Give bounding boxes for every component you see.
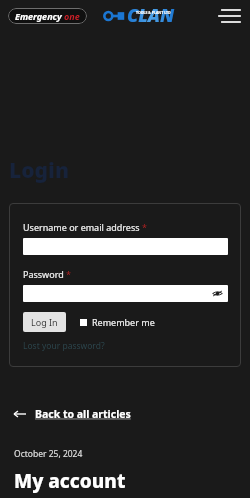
- button[interactable]: Log In: [23, 312, 66, 332]
- button[interactable]: Open menu: [214, 1, 244, 31]
- staticText: Remember me: [92, 316, 155, 328]
- staticText: Login: [9, 156, 69, 185]
- staticText: Password: [23, 268, 64, 280]
- button[interactable]: Lost your password?: [23, 340, 105, 352]
- staticText: *: [66, 268, 71, 280]
- staticText: TOOLS & PLANT LTD: [136, 10, 171, 15]
- button[interactable]: Clan Tools and Plant: [104, 3, 175, 28]
- staticText: CLAN: [127, 3, 175, 28]
- staticText: October 25, 2024: [14, 448, 83, 460]
- staticText: My account: [14, 468, 126, 494]
- button[interactable]: Remember me: [80, 316, 155, 328]
- staticText: Username or email address: [23, 221, 140, 233]
- button[interactable]: Show password: [211, 287, 224, 300]
- staticText: Emergency one: [15, 10, 80, 22]
- button[interactable]: Password field: [23, 285, 228, 302]
- staticText: Back to all articles: [35, 407, 131, 421]
- button[interactable]: Emergency One home: [8, 8, 87, 24]
- staticText: Log In: [31, 316, 58, 328]
- staticText: *: [142, 221, 147, 233]
- button[interactable]: Back to all articles: [14, 407, 131, 421]
